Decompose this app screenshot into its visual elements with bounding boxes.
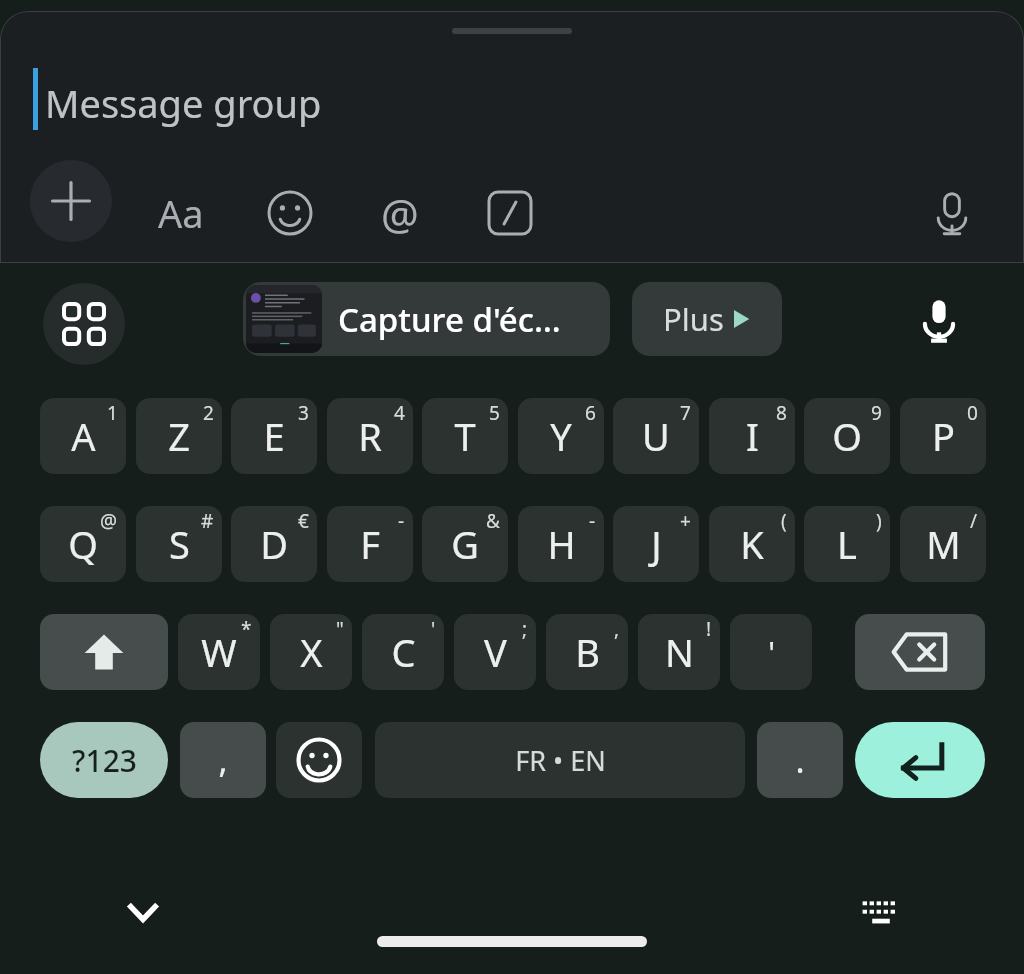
staticText: 0 xyxy=(967,400,978,426)
staticText: 3 xyxy=(298,400,309,426)
staticText: E xyxy=(263,410,285,462)
staticText: M xyxy=(926,518,961,570)
button[interactable]: L xyxy=(804,506,890,582)
button[interactable]: Voice typing xyxy=(900,281,978,359)
staticText: O xyxy=(832,410,862,462)
button[interactable]: ' xyxy=(730,614,812,690)
button[interactable]: J xyxy=(613,506,699,582)
staticText: T xyxy=(454,410,476,462)
button[interactable]: B xyxy=(546,614,628,690)
staticText: - xyxy=(589,508,596,534)
button[interactable]: N xyxy=(638,614,720,690)
button[interactable]: Q xyxy=(40,506,126,582)
staticText: 6 xyxy=(585,400,596,426)
staticText: ( xyxy=(781,508,787,534)
staticText: € xyxy=(298,508,309,534)
button[interactable]: W xyxy=(178,614,260,690)
staticText: 5 xyxy=(489,400,500,426)
button[interactable]: X xyxy=(270,614,352,690)
button[interactable]: Shift xyxy=(40,614,168,690)
button[interactable]: H xyxy=(518,506,604,582)
staticText: Z xyxy=(168,410,190,462)
staticText: U xyxy=(642,410,670,462)
staticText: ' xyxy=(431,616,436,642)
button[interactable]: FR • EN xyxy=(375,722,745,798)
staticText: + xyxy=(680,508,691,534)
staticText: C xyxy=(391,626,416,678)
staticText: @ xyxy=(100,508,118,534)
staticText: P xyxy=(932,410,955,462)
button[interactable]: Y xyxy=(518,398,604,474)
staticText: ! xyxy=(706,616,712,642)
button[interactable]: S xyxy=(136,506,222,582)
button[interactable]: Enter xyxy=(855,722,985,798)
staticText: . xyxy=(795,737,805,783)
button[interactable]: Hide keyboard xyxy=(103,872,183,952)
button[interactable]: Emoji xyxy=(250,173,330,253)
button[interactable]: P xyxy=(900,398,986,474)
button[interactable]: F xyxy=(327,506,413,582)
button[interactable]: O xyxy=(804,398,890,474)
staticText: R xyxy=(358,410,382,462)
staticText: / xyxy=(970,508,978,534)
button[interactable]: Voice input xyxy=(912,173,992,253)
staticText: 8 xyxy=(776,400,787,426)
button[interactable]: Add attachment xyxy=(30,160,112,242)
staticText: , xyxy=(614,616,620,642)
staticText: , xyxy=(218,737,228,783)
button[interactable]: Z xyxy=(136,398,222,474)
staticText: Aa xyxy=(158,187,204,239)
staticText: 2 xyxy=(203,400,214,426)
staticText: K xyxy=(740,518,764,570)
staticText: Message group xyxy=(45,77,322,129)
button[interactable]: K xyxy=(709,506,795,582)
button[interactable]: Backspace xyxy=(855,614,985,690)
staticText: Y xyxy=(550,410,572,462)
staticText: " xyxy=(336,616,344,642)
staticText: S xyxy=(169,518,190,570)
button[interactable]: Keyboard apps xyxy=(43,283,125,365)
button[interactable]: U xyxy=(613,398,699,474)
staticText: 1 xyxy=(107,400,118,426)
button[interactable]: . xyxy=(757,722,843,798)
staticText: L xyxy=(837,518,857,570)
staticText: I xyxy=(746,410,759,462)
staticText: @ xyxy=(381,185,419,242)
button[interactable]: T xyxy=(422,398,508,474)
staticText: # xyxy=(201,508,214,534)
button[interactable]: ?123 xyxy=(40,722,168,798)
staticText: ; xyxy=(522,616,528,642)
button[interactable]: G xyxy=(422,506,508,582)
button[interactable]: V xyxy=(454,614,536,690)
button[interactable]: E xyxy=(231,398,317,474)
button[interactable]: Mention xyxy=(360,173,440,253)
staticText: D xyxy=(260,518,288,570)
button[interactable]: A xyxy=(40,398,126,474)
staticText: 4 xyxy=(394,400,405,426)
staticText: J xyxy=(651,518,662,570)
staticText: A xyxy=(71,410,96,462)
button[interactable]: Capture d'éc… xyxy=(243,282,610,356)
staticText: * xyxy=(241,616,252,642)
button[interactable]: Aa xyxy=(141,173,221,253)
staticText: N xyxy=(665,626,694,678)
staticText: H xyxy=(547,518,576,570)
staticText: ) xyxy=(876,508,882,534)
staticText: Plus xyxy=(663,298,724,340)
button[interactable]: D xyxy=(231,506,317,582)
button[interactable]: Switch keyboard xyxy=(841,872,921,952)
button[interactable]: , xyxy=(180,722,266,798)
button[interactable]: R xyxy=(327,398,413,474)
button[interactable]: M xyxy=(900,506,986,582)
staticText: 7 xyxy=(680,400,691,426)
staticText: V xyxy=(484,626,507,678)
button[interactable]: Slash command xyxy=(470,173,550,253)
button[interactable]: C xyxy=(362,614,444,690)
button[interactable]: Plus xyxy=(632,282,782,356)
staticText: B xyxy=(575,626,600,678)
staticText: ?123 xyxy=(72,740,137,781)
staticText: G xyxy=(451,518,479,570)
button[interactable]: Emoji xyxy=(276,722,362,798)
button[interactable]: I xyxy=(709,398,795,474)
staticText: Capture d'éc… xyxy=(338,297,561,342)
